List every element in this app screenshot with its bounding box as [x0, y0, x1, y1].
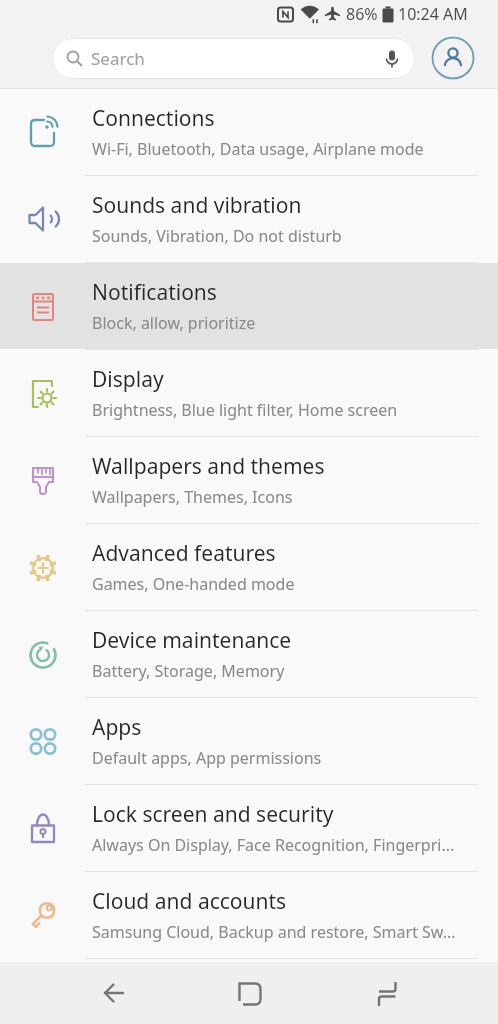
staticText: Connections — [92, 104, 215, 133]
staticText: Games, One-handed mode — [92, 573, 295, 595]
staticText: Wallpapers and themes — [92, 452, 325, 481]
staticText: Default apps, App permissions — [92, 747, 322, 769]
staticText: 86% — [346, 3, 378, 25]
button[interactable] — [84, 965, 140, 1021]
staticText: Battery, Storage, Memory — [92, 660, 285, 682]
button[interactable] — [431, 36, 475, 80]
staticText: Sounds, Vibration, Do not disturb — [92, 225, 342, 247]
button[interactable]: Connections — [0, 89, 498, 175]
button[interactable]: Device maintenance — [0, 611, 498, 697]
button[interactable]: Advanced features — [0, 524, 498, 610]
button[interactable]: Apps — [0, 698, 498, 784]
button[interactable]: Lock screen and security — [0, 785, 498, 871]
button[interactable]: Search — [52, 38, 415, 79]
staticText: Device maintenance — [92, 626, 292, 655]
staticText: Search — [91, 47, 145, 70]
staticText: Sounds and vibration — [92, 191, 302, 220]
staticText: Apps — [92, 713, 142, 742]
button[interactable]: Display — [0, 350, 498, 436]
staticText: Display — [92, 365, 164, 394]
button[interactable]: Wallpapers and themes — [0, 437, 498, 523]
staticText: Brightness, Blue light filter, Home scre… — [92, 399, 398, 421]
button[interactable]: Notifications — [0, 263, 498, 349]
staticText: Notifications — [92, 278, 217, 307]
staticText: Advanced features — [92, 539, 276, 568]
staticText: Samsung Cloud, Backup and restore, Smart… — [92, 921, 456, 943]
staticText: Always On Display, Face Recognition, Fin… — [92, 834, 455, 856]
staticText: Wi-Fi, Bluetooth, Data usage, Airplane m… — [92, 138, 424, 160]
button[interactable]: Cloud and accounts — [0, 872, 498, 958]
button[interactable] — [221, 965, 277, 1021]
staticText: Cloud and accounts — [92, 887, 287, 916]
staticText: Lock screen and security — [92, 800, 334, 829]
staticText: 10:24 AM — [398, 3, 468, 25]
staticText: Wallpapers, Themes, Icons — [92, 486, 293, 508]
button[interactable]: Sounds and vibration — [0, 176, 498, 262]
button[interactable] — [358, 965, 414, 1021]
button[interactable] — [383, 50, 401, 68]
staticText: Block, allow, prioritize — [92, 312, 256, 334]
